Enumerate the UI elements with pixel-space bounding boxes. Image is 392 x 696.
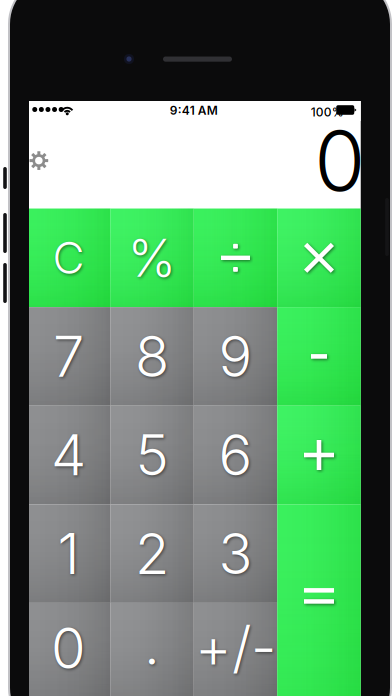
staticText: +/- xyxy=(195,613,276,681)
staticText: 3 xyxy=(218,520,252,587)
staticText: 1 xyxy=(57,520,79,587)
staticText: C xyxy=(52,231,84,284)
button[interactable]: C xyxy=(27,208,110,307)
staticText: % xyxy=(127,226,176,289)
staticText: 100% xyxy=(311,105,344,119)
staticText: 0 xyxy=(51,614,86,682)
button[interactable]: Settings xyxy=(27,139,71,183)
button[interactable]: . xyxy=(110,603,194,696)
button[interactable]: 6 xyxy=(194,406,277,504)
button[interactable]: 2 xyxy=(110,504,194,603)
button[interactable]: 7 xyxy=(27,307,110,406)
button[interactable]: 5 xyxy=(110,406,194,504)
button[interactable]: Plus minus xyxy=(194,603,277,696)
staticText: 9:41 AM xyxy=(170,103,218,118)
button[interactable]: 4 xyxy=(27,406,110,504)
button[interactable]: 9 xyxy=(194,307,277,406)
staticText: 9 xyxy=(218,322,252,390)
staticText: 7 xyxy=(53,322,84,390)
staticText: 8 xyxy=(135,322,169,390)
button[interactable]: % xyxy=(110,208,194,307)
button[interactable]: 3 xyxy=(194,504,277,603)
staticText: 0 xyxy=(314,111,365,211)
button[interactable]: 8 xyxy=(110,307,194,406)
staticText: . xyxy=(144,610,160,678)
button[interactable]: Equals xyxy=(277,504,361,696)
staticText: 6 xyxy=(218,421,252,489)
button[interactable]: Plus xyxy=(277,406,361,504)
button[interactable]: 0 xyxy=(27,603,110,696)
staticText: 4 xyxy=(51,421,86,489)
staticText: 5 xyxy=(135,421,168,489)
button[interactable]: 1 xyxy=(27,504,110,603)
staticText: 2 xyxy=(135,520,169,587)
button[interactable]: Divide xyxy=(194,208,277,307)
button[interactable]: Multiply xyxy=(277,208,361,307)
button[interactable]: Minus xyxy=(277,307,361,406)
